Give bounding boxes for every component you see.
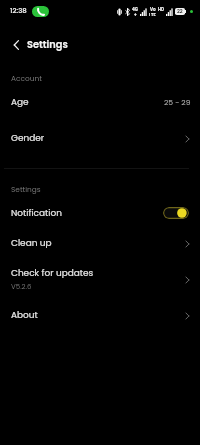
staticText: 4G	[132, 7, 139, 13]
staticText: 25 - 29	[164, 97, 191, 108]
staticText: Settings	[11, 184, 41, 194]
staticText: HD	[158, 7, 165, 13]
staticText: Gender	[11, 132, 45, 145]
staticText: LTE	[149, 13, 156, 16]
button[interactable]: Age	[0, 90, 200, 114]
staticText: Notification	[11, 207, 163, 220]
button[interactable]: Notification	[0, 201, 200, 225]
staticText: About	[11, 309, 38, 322]
staticText: V5.2.6	[11, 282, 32, 292]
button[interactable]: Notification toggle	[163, 207, 189, 219]
button[interactable]: Clean up	[0, 231, 200, 255]
staticText: 12:38	[10, 6, 27, 16]
staticText: Settings	[27, 38, 68, 52]
staticText: Account	[11, 73, 42, 83]
button[interactable]: About	[0, 303, 200, 327]
button[interactable]: Back	[8, 37, 24, 53]
staticText: Age	[11, 96, 29, 109]
staticText: 22	[177, 8, 183, 15]
staticText: Clean up	[11, 237, 52, 250]
staticText: Check for updates	[11, 267, 94, 280]
button[interactable]: Check for updates	[0, 261, 200, 297]
staticText: Vo	[150, 7, 156, 13]
button[interactable]: Gender	[0, 126, 200, 150]
staticText: +	[134, 13, 137, 16]
